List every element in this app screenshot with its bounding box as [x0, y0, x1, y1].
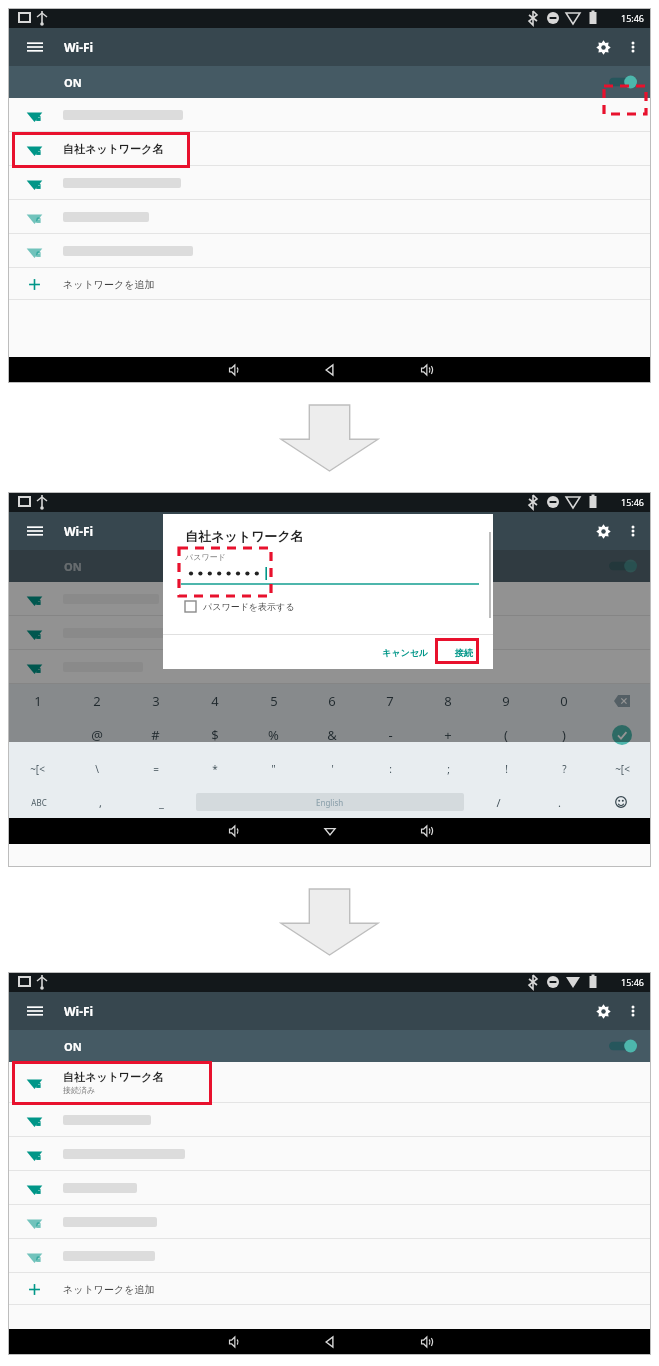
button[interactable]: _ — [131, 786, 192, 818]
button[interactable]: English — [196, 793, 464, 811]
button[interactable]: $ — [185, 718, 244, 752]
button[interactable] — [8, 1137, 651, 1171]
staticText: パスワード — [185, 552, 226, 562]
button[interactable]: ( — [477, 718, 535, 752]
button[interactable]: / — [468, 786, 529, 818]
staticText: 接続 — [455, 647, 473, 658]
staticText: 15:46 — [621, 12, 645, 24]
button[interactable]: Menu — [18, 30, 52, 64]
button[interactable]: \ — [67, 752, 126, 786]
button[interactable]: ON — [8, 66, 651, 98]
button[interactable] — [8, 616, 651, 650]
button[interactable]: & — [303, 718, 361, 752]
button[interactable]: 4 — [185, 684, 244, 718]
button[interactable]: Back — [315, 1329, 345, 1355]
staticText: 15:46 — [621, 976, 645, 988]
staticText: $ — [211, 726, 219, 744]
staticText: + — [444, 726, 452, 744]
button[interactable]: Volume down — [219, 818, 249, 844]
button[interactable]: 自社ネットワーク名 — [8, 1062, 651, 1103]
button[interactable]: ON — [8, 550, 651, 582]
button[interactable]: パスワードを表示する — [185, 601, 295, 612]
button[interactable]: - — [361, 718, 419, 752]
staticText: * — [212, 762, 218, 776]
button[interactable]: * — [185, 752, 244, 786]
button[interactable] — [8, 1205, 651, 1239]
button[interactable]: Enter — [593, 718, 651, 752]
button[interactable]: 2 — [67, 684, 126, 718]
button[interactable]: 1 — [8, 684, 67, 718]
button[interactable]: Volume down — [219, 357, 249, 383]
button[interactable]: ~[< — [593, 752, 651, 786]
button[interactable]: ネットワークを追加 — [8, 268, 651, 300]
button[interactable] — [8, 98, 651, 132]
button[interactable]: ! — [477, 752, 535, 786]
staticText: ! — [505, 762, 508, 776]
button[interactable]: ABC — [8, 786, 70, 818]
button[interactable]: Backspace — [593, 684, 651, 718]
staticText: / — [496, 795, 501, 810]
button[interactable]: 9 — [477, 684, 535, 718]
button[interactable]: " — [244, 752, 303, 786]
staticText: ネットワークを追加 — [63, 278, 155, 291]
button[interactable]: 接続 — [445, 641, 483, 664]
button[interactable]: ~[< — [8, 752, 67, 786]
button[interactable]: . — [529, 786, 590, 818]
staticText: = — [153, 762, 159, 776]
button[interactable] — [8, 1171, 651, 1205]
button[interactable]: キャンセル — [372, 641, 439, 664]
button[interactable]: Menu — [18, 514, 52, 548]
staticText: 接続済み — [63, 1085, 96, 1095]
staticText: 8 — [444, 692, 452, 710]
staticText: 7 — [386, 692, 394, 710]
button[interactable]: + — [419, 718, 477, 752]
staticText: Wi-Fi — [64, 39, 94, 55]
button[interactable]: More options — [619, 997, 647, 1025]
button[interactable]: ? — [535, 752, 593, 786]
button[interactable]: # — [126, 718, 185, 752]
staticText: キャンセル — [382, 647, 429, 658]
button[interactable]: 6 — [303, 684, 361, 718]
staticText: 9 — [502, 692, 510, 710]
button[interactable]: = — [126, 752, 185, 786]
button[interactable]: 3 — [126, 684, 185, 718]
button[interactable]: Volume up — [411, 818, 441, 844]
button[interactable]: 7 — [361, 684, 419, 718]
button[interactable]: @ — [67, 718, 126, 752]
button[interactable] — [8, 1103, 651, 1137]
staticText: 5 — [270, 692, 278, 710]
button[interactable]: 自社ネットワーク名 — [8, 132, 651, 166]
button[interactable] — [8, 1239, 651, 1273]
button[interactable]: Menu — [18, 994, 52, 1028]
staticText: 自社ネットワーク名 — [63, 142, 164, 156]
button[interactable]: Emoji — [590, 786, 651, 818]
button[interactable]: Back — [315, 357, 345, 383]
button[interactable]: Settings — [587, 515, 619, 547]
button[interactable]: , — [70, 786, 131, 818]
button[interactable]: : — [361, 752, 419, 786]
button[interactable]: More options — [619, 517, 647, 545]
button[interactable] — [8, 582, 651, 616]
button[interactable]: Volume down — [219, 1329, 249, 1355]
button[interactable] — [8, 166, 651, 200]
button[interactable]: ; — [419, 752, 477, 786]
button[interactable]: Hide keyboard — [315, 818, 345, 844]
button[interactable] — [8, 200, 651, 234]
button[interactable]: ' — [303, 752, 361, 786]
button[interactable]: ON — [8, 1030, 651, 1062]
button[interactable] — [8, 650, 651, 684]
button[interactable]: More options — [619, 33, 647, 61]
button[interactable]: ネットワークを追加 — [8, 1273, 651, 1305]
button[interactable]: ) — [535, 718, 593, 752]
button[interactable]: % — [244, 718, 303, 752]
button[interactable]: Settings — [587, 31, 619, 63]
staticText: ABC — [31, 797, 47, 808]
staticText: ~[< — [30, 762, 45, 776]
button[interactable]: Volume up — [411, 357, 441, 383]
button[interactable]: Settings — [587, 995, 619, 1027]
button[interactable]: 5 — [244, 684, 303, 718]
button[interactable]: 0 — [535, 684, 593, 718]
button[interactable] — [8, 234, 651, 268]
button[interactable]: 8 — [419, 684, 477, 718]
button[interactable]: Volume up — [411, 1329, 441, 1355]
